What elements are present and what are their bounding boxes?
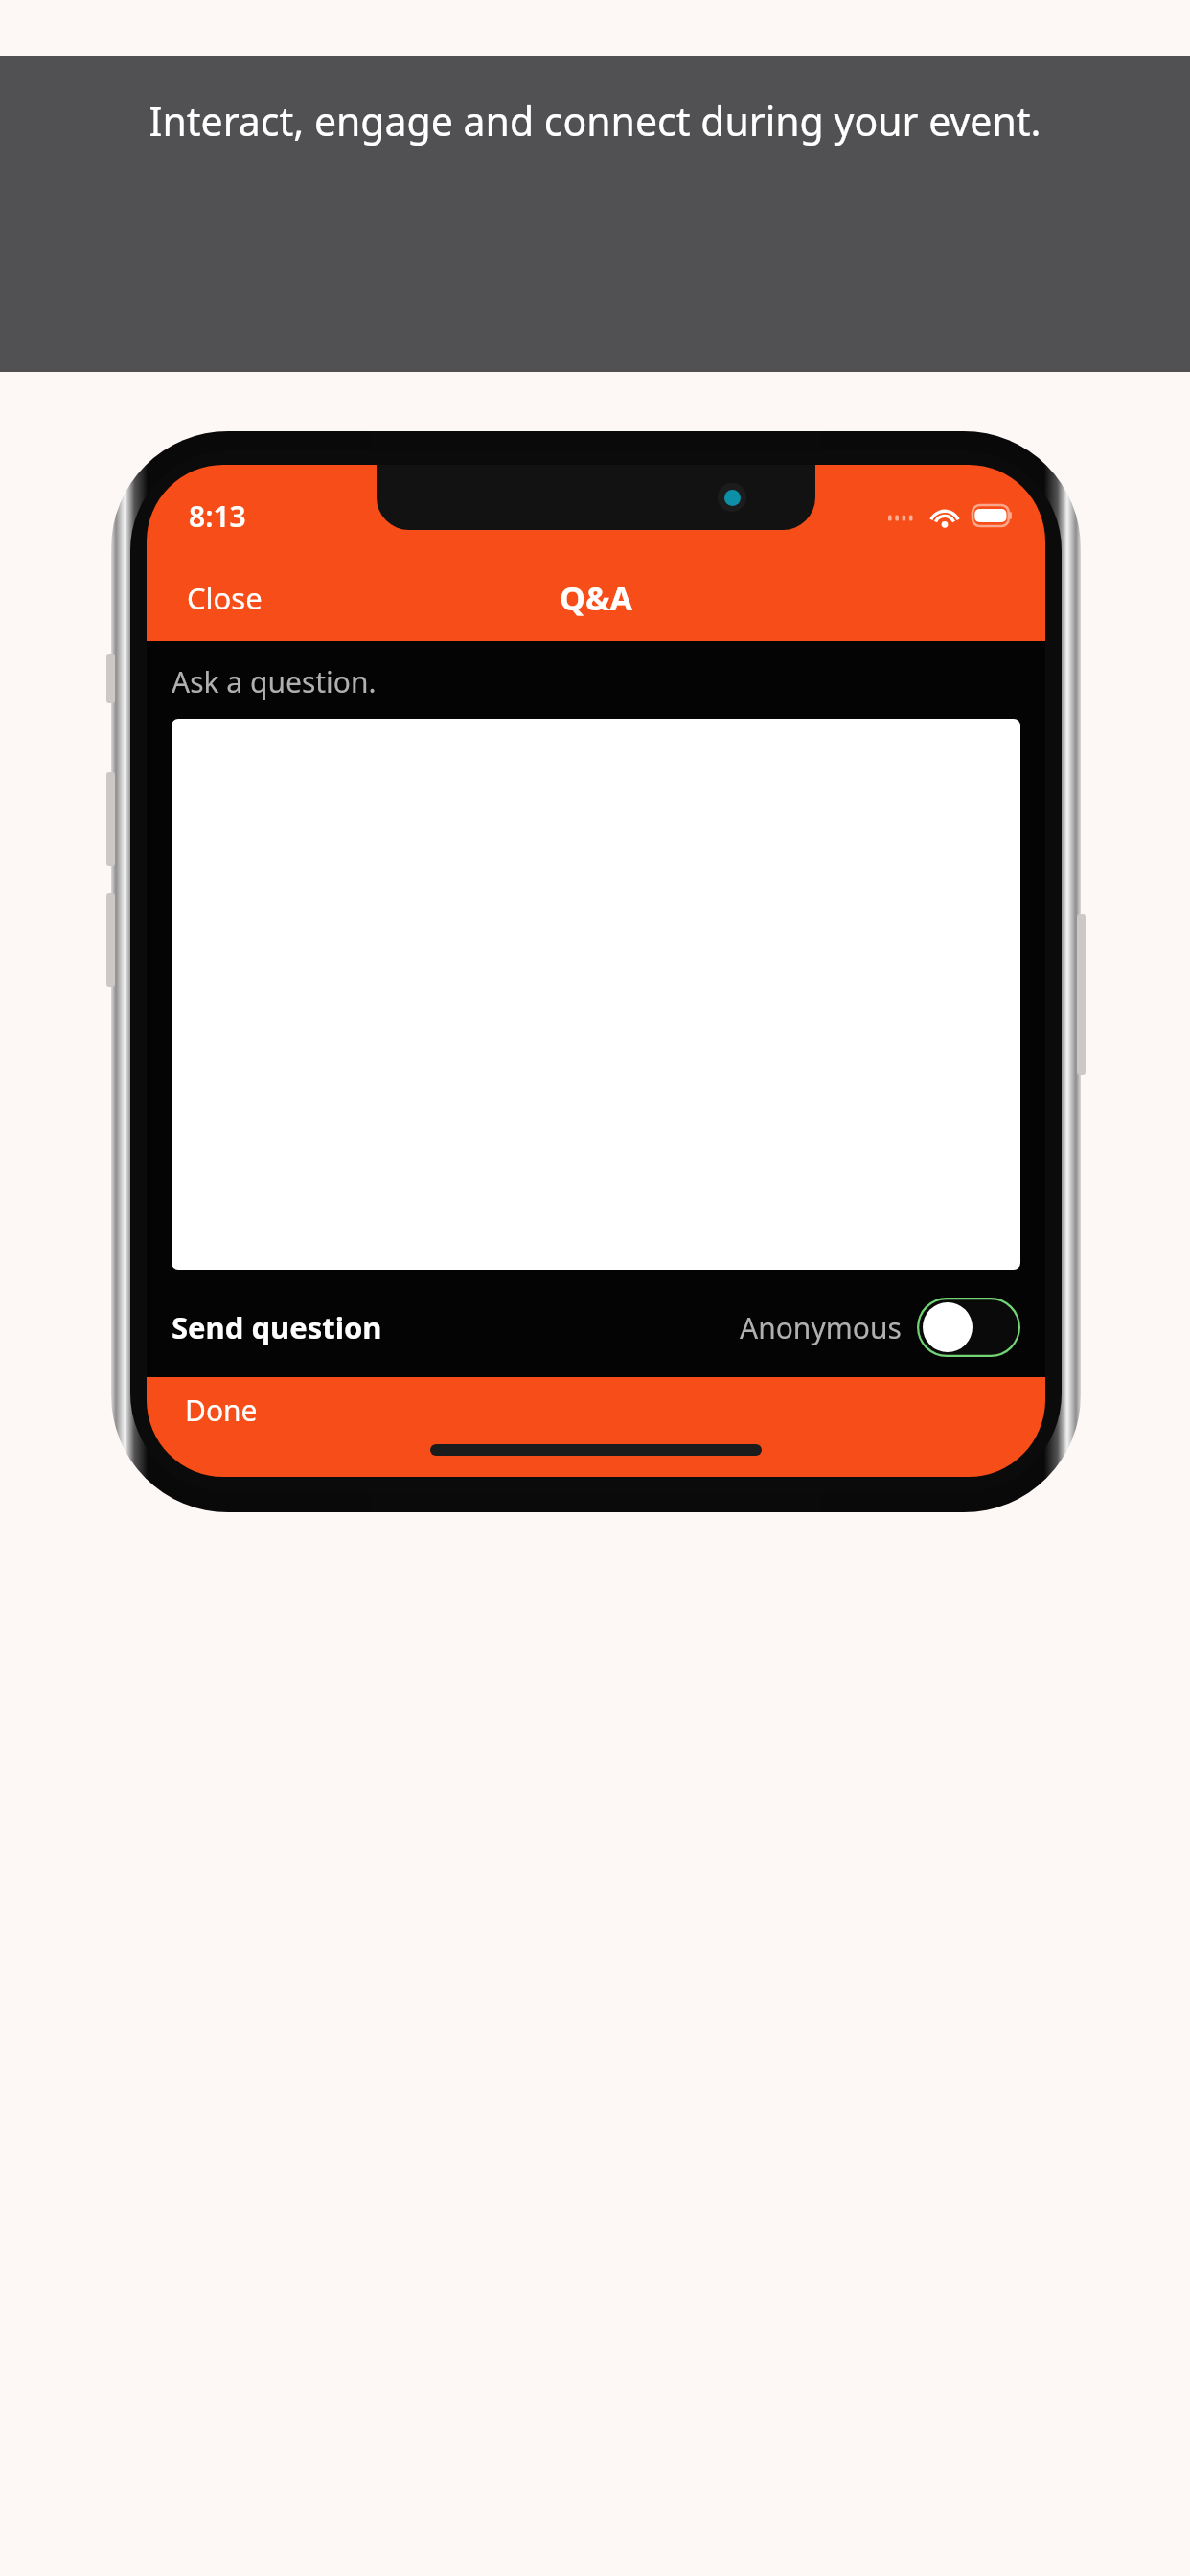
staticText: Anonymous — [740, 1308, 902, 1347]
button[interactable]: Close — [147, 563, 303, 633]
staticText: 8:13 — [189, 496, 246, 536]
button[interactable]: Send question — [172, 1298, 382, 1357]
button[interactable]: Done — [147, 1377, 283, 1439]
button[interactable]: Anonymous toggle — [917, 1298, 1020, 1357]
staticText: Done — [185, 1391, 258, 1430]
staticText: Send question — [172, 1307, 382, 1347]
staticText: Close — [187, 578, 263, 618]
staticText: Interact, engage and connect during your… — [42, 94, 1148, 148]
staticText: Ask a question. — [172, 662, 377, 701]
staticText: Q&A — [560, 576, 632, 620]
